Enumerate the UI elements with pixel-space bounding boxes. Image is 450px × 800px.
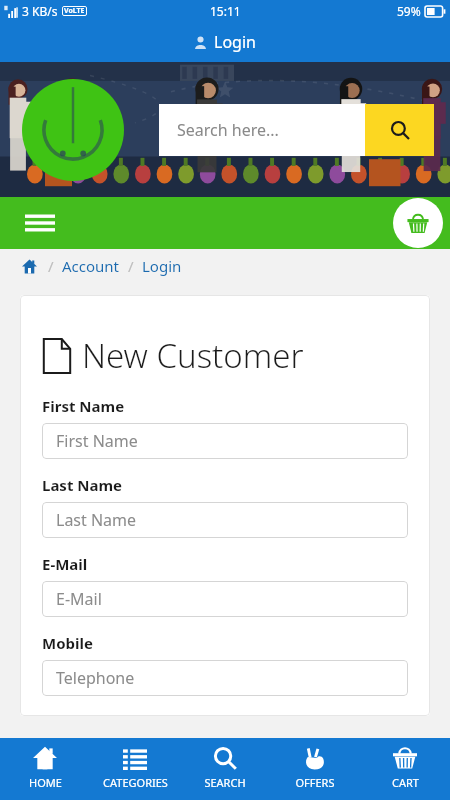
staticText: SEARCH [204,775,246,790]
button[interactable]: Grocery home [22,79,124,181]
button[interactable]: CART [360,738,450,800]
staticText: Mobile [42,633,93,653]
button[interactable]: First Name [42,423,408,459]
button[interactable]: OFFERS [270,738,360,800]
staticText: E-Mail [42,554,88,574]
staticText: 15:11 [210,3,241,19]
button[interactable]: Login [142,256,182,276]
staticText: OFFERS [295,775,335,790]
button[interactable]: SEARCH [180,738,270,800]
staticText: CART [392,775,419,790]
button[interactable]: Login [186,27,264,57]
button[interactable]: Last Name [42,502,408,538]
staticText: CATEGORIES [103,775,168,790]
staticText: New Customer [82,333,304,378]
staticText: Search here... [177,119,279,141]
button[interactable]: CATEGORIES [90,738,180,800]
button[interactable]: E-Mail [42,581,408,617]
staticText: Telephone [56,667,135,689]
staticText: E-Mail [56,588,102,610]
staticText: Account [62,256,120,276]
staticText: / [48,256,54,276]
staticText: First Name [56,430,138,452]
button[interactable]: Search here... [159,104,365,156]
staticText: First Name [42,396,125,416]
button[interactable]: Home [18,255,40,277]
button[interactable]: Menu [20,203,60,243]
button[interactable]: Account [62,256,120,276]
staticText: Login [214,31,256,53]
staticText: / [128,256,134,276]
staticText: 59% [397,3,421,19]
button[interactable]: Search [365,104,434,156]
staticText: Last Name [42,475,123,495]
staticText: Login [142,256,182,276]
button[interactable]: Telephone [42,660,408,696]
staticText: VoLTE [64,6,85,16]
button[interactable]: Cart [393,198,443,248]
staticText: Last Name [56,509,137,531]
staticText: HOME [29,775,62,790]
button[interactable]: HOME [0,738,90,800]
staticText: 3 KB/s [22,3,58,19]
